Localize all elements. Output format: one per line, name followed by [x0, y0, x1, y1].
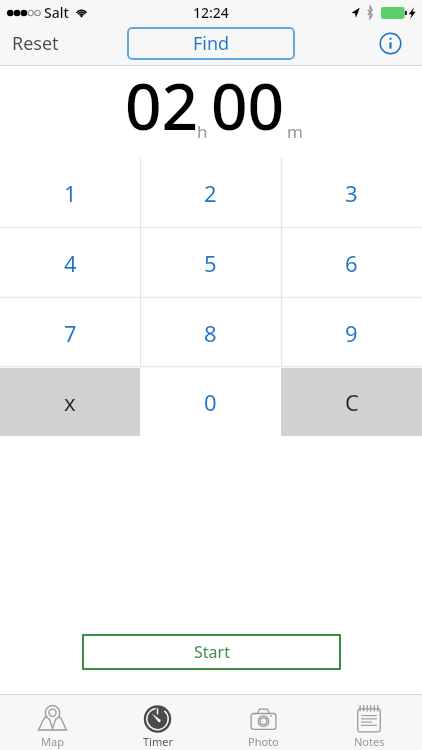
button[interactable]: Notes [316, 694, 422, 750]
staticText: 0 [204, 387, 217, 417]
staticText: 1 [64, 178, 77, 208]
button[interactable]: 7 [0, 298, 140, 368]
button[interactable]: Find [127, 27, 295, 60]
button[interactable]: Start [82, 634, 341, 670]
button[interactable]: 4 [0, 228, 140, 298]
button[interactable]: 8 [140, 298, 281, 368]
staticText: Timer [143, 734, 173, 749]
staticText: Salt [44, 3, 69, 22]
staticText: 02 [125, 62, 199, 149]
staticText: 00 [211, 62, 285, 149]
button[interactable]: Reset [0, 23, 75, 63]
button[interactable]: Map [0, 694, 105, 750]
staticText: Reset [12, 31, 59, 56]
button[interactable]: 0 [140, 368, 281, 436]
staticText: 2 [204, 178, 217, 208]
button[interactable]: 9 [281, 298, 422, 368]
staticText: Map [41, 734, 64, 749]
staticText: Find [193, 31, 230, 56]
staticText: h [197, 120, 208, 143]
button[interactable]: 5 [140, 228, 281, 298]
staticText: m [287, 120, 303, 143]
button[interactable]: 6 [281, 228, 422, 298]
button[interactable]: 3 [281, 158, 422, 228]
staticText: 5 [204, 248, 217, 278]
staticText: 9 [345, 318, 358, 348]
staticText: 7 [64, 318, 77, 348]
button[interactable]: Photo [210, 694, 316, 750]
button[interactable]: C [281, 368, 422, 436]
button[interactable]: Timer [105, 694, 210, 750]
staticText: 6 [345, 248, 358, 278]
staticText: x [64, 387, 76, 417]
staticText: Notes [354, 734, 385, 749]
staticText: C [345, 387, 359, 417]
button[interactable]: Info [368, 21, 412, 65]
button[interactable]: x [0, 368, 140, 436]
staticText: 4 [64, 248, 77, 278]
staticText: Start [194, 641, 230, 663]
staticText: Photo [248, 734, 279, 749]
staticText: 12:24 [193, 3, 229, 22]
staticText: 8 [204, 318, 217, 348]
button[interactable]: 1 [0, 158, 140, 228]
button[interactable]: 2 [140, 158, 281, 228]
staticText: 3 [345, 178, 358, 208]
